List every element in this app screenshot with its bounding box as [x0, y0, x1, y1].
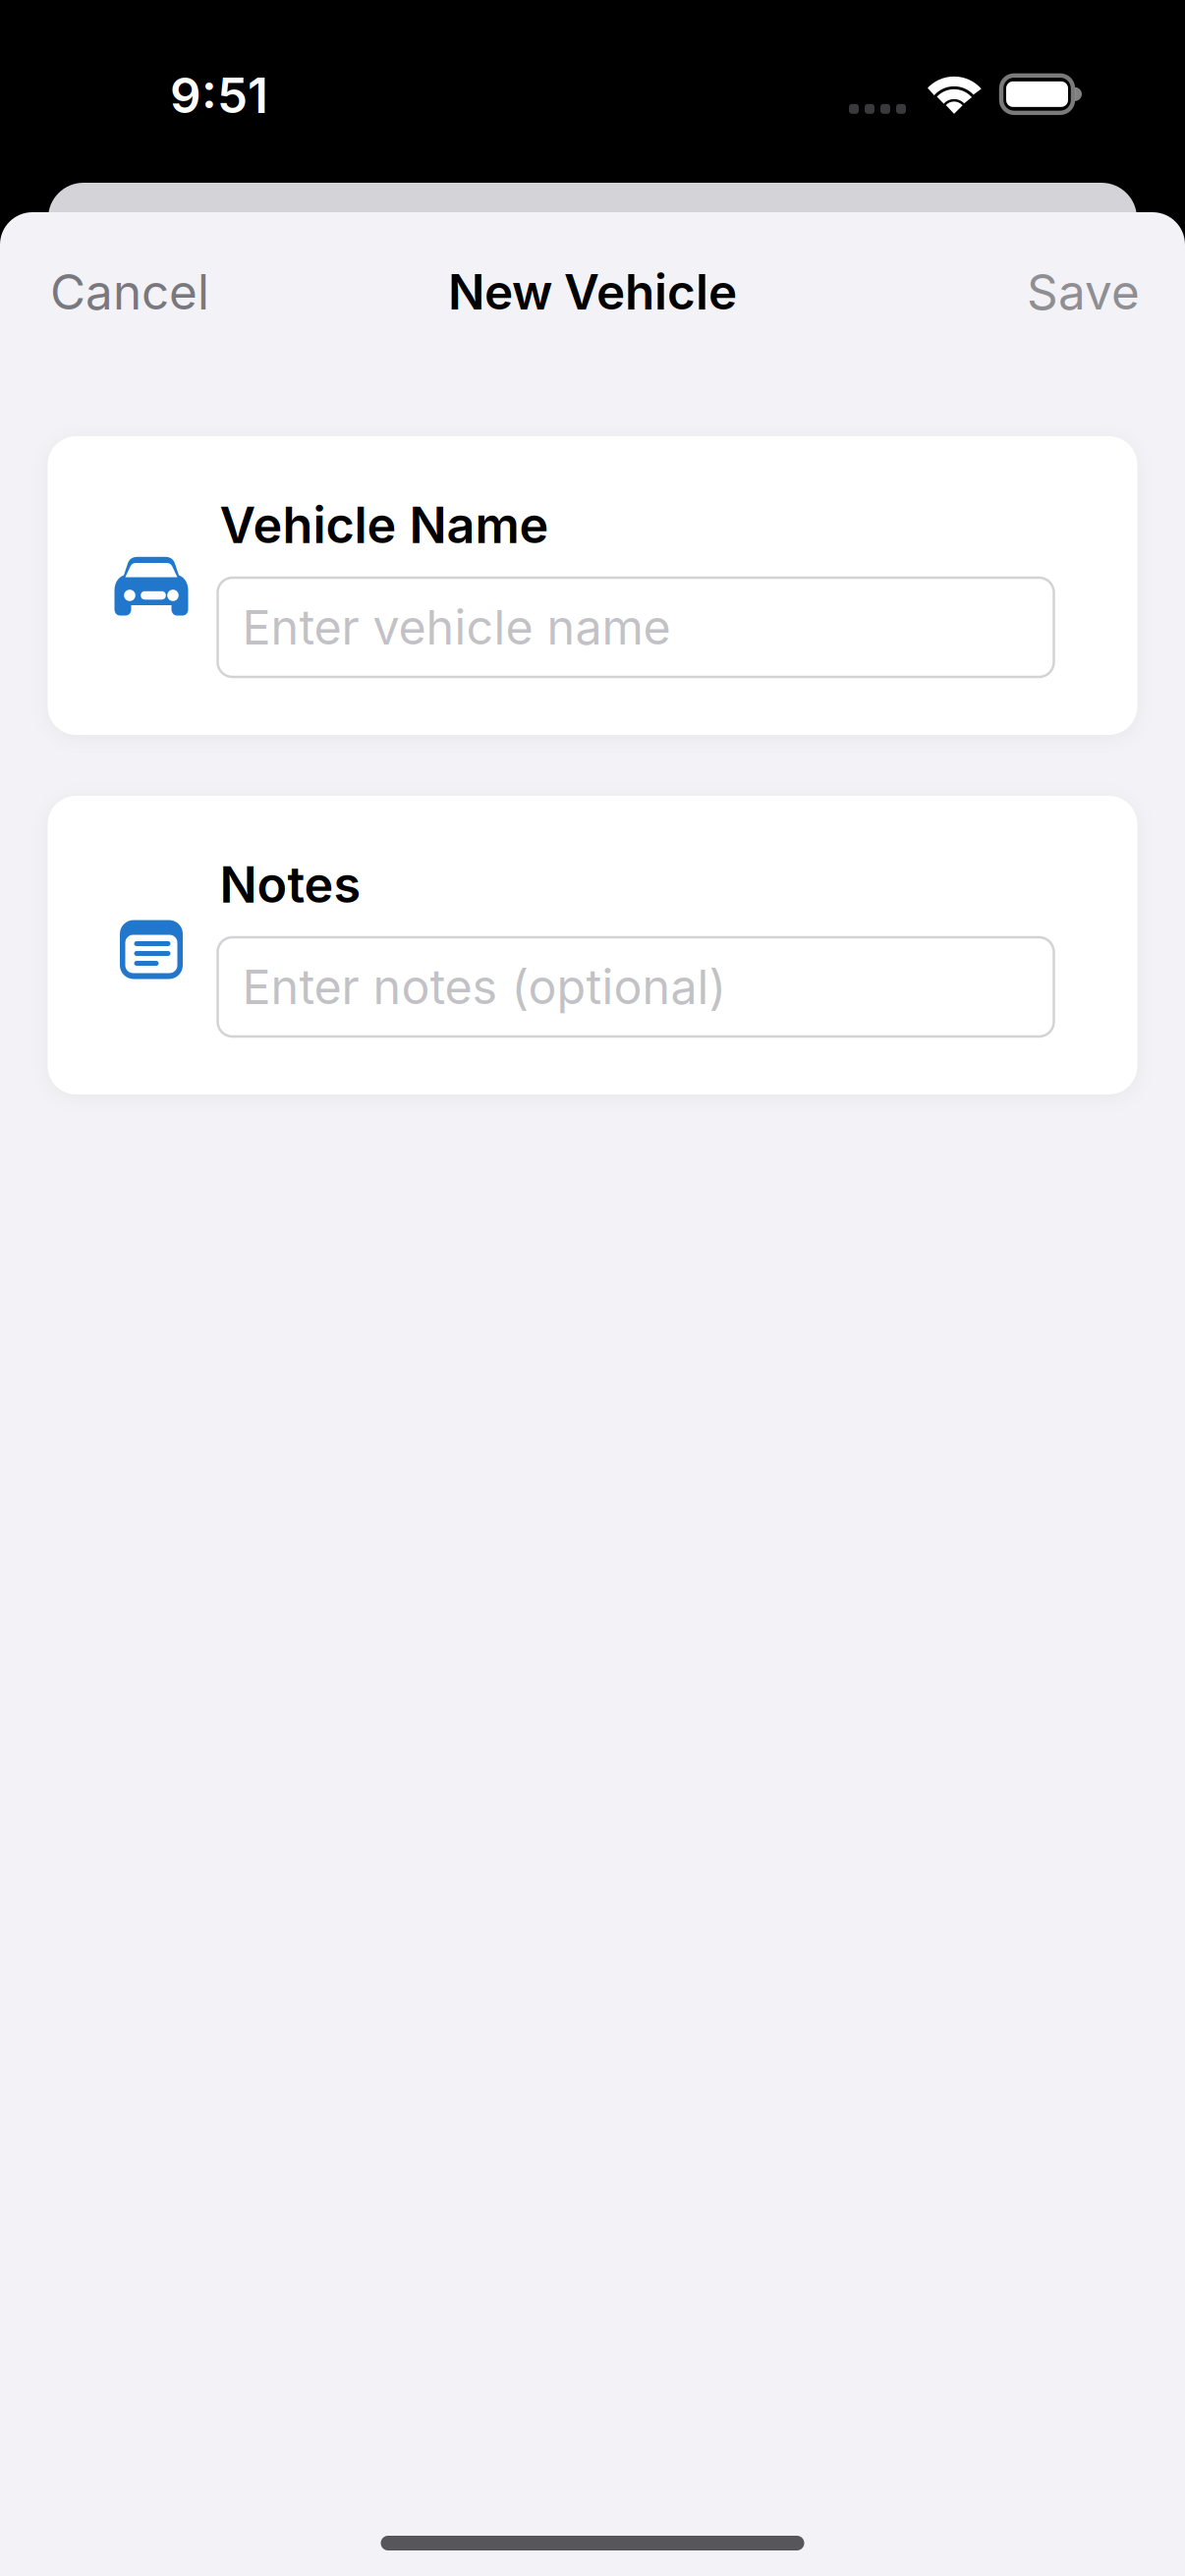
button[interactable]: Cancel — [28, 241, 231, 343]
staticText: Enter notes (optional) — [242, 958, 727, 1016]
staticText: Cancel — [50, 263, 209, 321]
staticText: Notes — [220, 855, 361, 915]
staticText: Vehicle Name — [220, 495, 549, 555]
button[interactable]: Notes — [218, 937, 1054, 1036]
staticText: 9:51 — [170, 66, 268, 125]
staticText: Save — [1027, 263, 1140, 321]
button[interactable]: Save — [1005, 241, 1157, 343]
button[interactable]: Vehicle Name — [218, 578, 1054, 677]
staticText: New Vehicle — [448, 263, 737, 321]
staticText: Enter vehicle name — [242, 599, 671, 656]
